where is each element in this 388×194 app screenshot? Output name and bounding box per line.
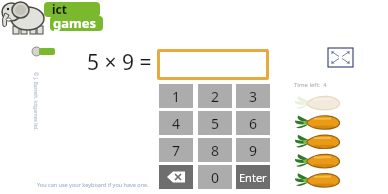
staticText: 6: [249, 114, 258, 133]
button[interactable]: Enter: [236, 165, 270, 189]
staticText: 4: [172, 114, 181, 133]
staticText: 5: [211, 114, 220, 133]
button[interactable]: 2: [198, 84, 232, 108]
button[interactable]: 9: [236, 138, 270, 162]
button[interactable]: 6: [236, 111, 270, 135]
button[interactable]: [328, 48, 353, 67]
staticText: Enter: [239, 170, 267, 185]
button[interactable]: 3: [236, 84, 270, 108]
button[interactable]: 5: [198, 111, 232, 135]
staticText: 7: [172, 141, 181, 160]
staticText: Time left: 4: [294, 81, 327, 89]
button[interactable]: [159, 165, 193, 189]
button[interactable]: 0: [198, 165, 232, 189]
staticText: 1: [172, 87, 181, 106]
staticText: 2: [211, 87, 220, 106]
staticText: 8: [211, 141, 220, 160]
staticText: You can use your keyboard if you have on…: [37, 181, 149, 188]
staticText: games: [53, 14, 96, 32]
staticText: 0: [211, 168, 220, 187]
button[interactable]: 7: [159, 138, 193, 162]
button[interactable]: 4: [159, 111, 193, 135]
staticText: ict: [52, 1, 67, 17]
staticText: © J. Barrett. ictgames ltd. 2007: [32, 72, 39, 141]
staticText: 9: [249, 141, 258, 160]
staticText: 3: [249, 87, 258, 106]
staticText: 5 × 9 =: [87, 48, 152, 77]
button[interactable]: 8: [198, 138, 232, 162]
button[interactable]: 1: [159, 84, 193, 108]
